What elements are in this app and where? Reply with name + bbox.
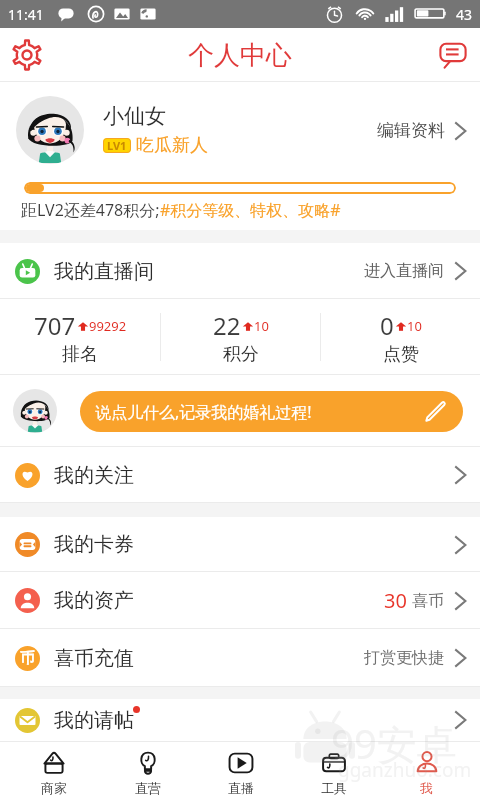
staticText: 喜币充值 [54, 646, 134, 671]
button[interactable]: 小仙女 [0, 82, 480, 178]
staticText: 30 [384, 587, 407, 614]
staticText: 积分 [223, 343, 259, 366]
staticText: 个人中心 [188, 39, 292, 72]
staticText: 打赏更快捷 [364, 648, 444, 668]
staticText: 商家 [41, 780, 67, 796]
button[interactable]: 我的关注 [0, 447, 480, 503]
staticText: LV1 [107, 138, 127, 153]
staticText: 707 [34, 309, 76, 342]
staticText: 吃瓜新人 [136, 134, 208, 157]
staticText: 我的请帖 [54, 708, 134, 733]
staticText: 我的直播间 [54, 259, 154, 284]
staticText: 99安卓 [331, 716, 457, 771]
staticText: 0 [380, 309, 394, 342]
button[interactable]: 22 [161, 299, 320, 375]
staticText: 我的关注 [54, 463, 134, 488]
staticText: 直播 [228, 780, 254, 796]
staticText: 距LV2还差478积分; [21, 199, 160, 221]
staticText: 点赞 [383, 343, 419, 366]
staticText: 进入直播间 [364, 261, 444, 281]
staticText: 编辑资料 [377, 120, 445, 141]
staticText: 我 [420, 780, 433, 796]
button[interactable]: 说点儿什么,记录我的婚礼过程! [80, 391, 463, 432]
staticText: 我的卡券 [54, 532, 134, 557]
staticText: 10 [407, 317, 422, 335]
staticText: 43 [456, 5, 473, 24]
button[interactable]: 我的卡券 [0, 517, 480, 572]
button[interactable]: 商家 [7, 741, 101, 800]
button[interactable]: 707 [0, 299, 160, 375]
button[interactable]: Messages [434, 36, 472, 74]
staticText: 22 [213, 309, 241, 342]
staticText: 币 [20, 649, 35, 668]
staticText: 喜币 [412, 591, 444, 611]
button[interactable]: 我的直播间 [0, 243, 480, 299]
other: Edit [424, 400, 447, 423]
button[interactable]: 我的资产 [0, 572, 480, 629]
button[interactable]: 编辑资料 [377, 120, 480, 141]
button[interactable]: 直营 [101, 741, 194, 800]
button[interactable]: 我的请帖 [0, 699, 480, 741]
staticText: 排名 [62, 343, 98, 366]
staticText: 我的资产 [54, 588, 134, 613]
button[interactable]: 0 [321, 299, 480, 375]
staticText: 工具 [321, 780, 347, 796]
button[interactable]: Settings [8, 36, 46, 74]
staticText: 99292 [89, 317, 127, 335]
staticText: 小仙女 [103, 103, 166, 129]
button[interactable]: 我 [380, 741, 473, 800]
button[interactable]: 币 [0, 629, 480, 687]
staticText: 11:41 [8, 5, 44, 24]
button[interactable]: 工具 [287, 741, 380, 800]
button[interactable]: 直播 [194, 741, 287, 800]
staticText: 直营 [135, 780, 161, 796]
staticText: #积分等级、特权、攻略# [160, 199, 341, 221]
staticText: 10 [254, 317, 269, 335]
staticText: 说点儿什么,记录我的婚礼过程! [95, 401, 312, 423]
staticText: gganzhuo.com [338, 757, 472, 783]
